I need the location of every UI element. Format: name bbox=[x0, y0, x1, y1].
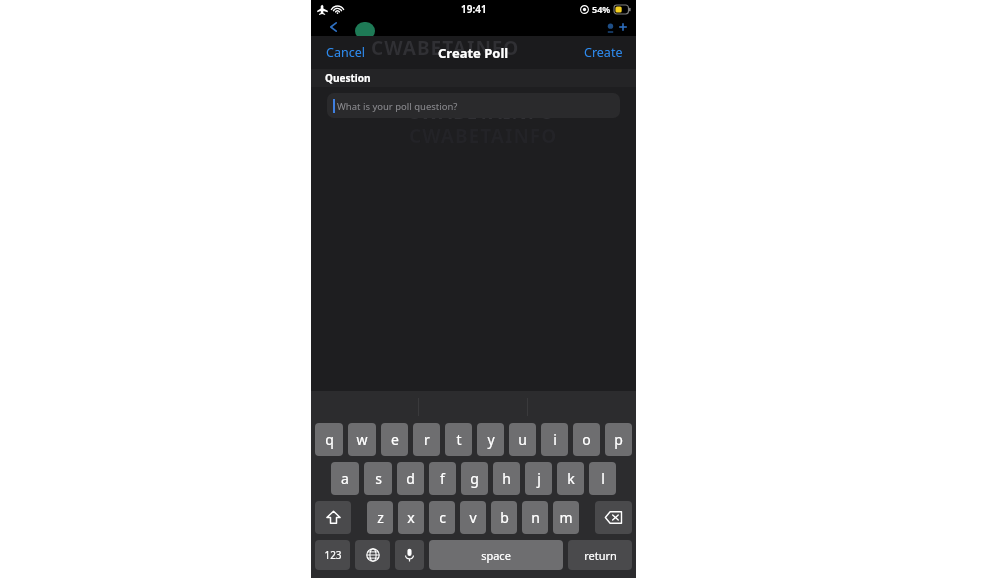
button[interactable]: v bbox=[460, 501, 486, 534]
button[interactable]: q bbox=[315, 423, 343, 456]
button[interactable]: Dictate bbox=[395, 540, 424, 570]
button[interactable]: space bbox=[429, 540, 563, 570]
button[interactable]: l bbox=[589, 462, 616, 495]
staticText: t bbox=[456, 430, 462, 449]
button[interactable]: e bbox=[381, 423, 408, 456]
staticText: g bbox=[470, 469, 479, 488]
staticText: e bbox=[391, 430, 399, 449]
button[interactable]: g bbox=[461, 462, 488, 495]
staticText: What is your poll question? bbox=[337, 100, 458, 113]
button[interactable]: h bbox=[493, 462, 520, 495]
staticText: 19:41 bbox=[461, 2, 487, 16]
staticText: x bbox=[407, 508, 415, 527]
button[interactable]: z bbox=[367, 501, 393, 534]
button[interactable]: 123 bbox=[315, 540, 350, 570]
staticText: u bbox=[518, 430, 527, 449]
staticText: w bbox=[356, 430, 368, 449]
button[interactable]: j bbox=[525, 462, 552, 495]
staticText: n bbox=[531, 508, 540, 527]
staticText: y bbox=[487, 430, 495, 449]
button[interactable]: x bbox=[398, 501, 424, 534]
button[interactable]: n bbox=[522, 501, 548, 534]
staticText: v bbox=[469, 508, 477, 527]
button[interactable]: Shift bbox=[315, 501, 351, 534]
staticText: d bbox=[406, 469, 415, 488]
button[interactable]: s bbox=[364, 462, 392, 495]
staticText: j bbox=[537, 469, 541, 488]
button[interactable]: t bbox=[445, 423, 472, 456]
button[interactable]: w bbox=[348, 423, 376, 456]
staticText: return bbox=[584, 548, 617, 563]
button[interactable]: r bbox=[413, 423, 440, 456]
staticText: p bbox=[614, 430, 623, 449]
staticText: CWABETAINFO bbox=[407, 99, 556, 125]
staticText: a bbox=[341, 469, 349, 488]
staticText: m bbox=[559, 508, 573, 527]
staticText: CWABETAINFO bbox=[371, 35, 520, 61]
staticText: q bbox=[325, 430, 334, 449]
button[interactable]: p bbox=[605, 423, 632, 456]
button[interactable]: u bbox=[509, 423, 536, 456]
staticText: r bbox=[424, 430, 430, 449]
button[interactable]: d bbox=[397, 462, 424, 495]
staticText: space bbox=[481, 548, 511, 563]
button[interactable]: y bbox=[477, 423, 504, 456]
button[interactable]: a bbox=[331, 462, 359, 495]
staticText: s bbox=[375, 469, 382, 488]
button[interactable]: f bbox=[429, 462, 456, 495]
staticText: 123 bbox=[324, 548, 342, 562]
staticText: o bbox=[582, 430, 591, 449]
staticText: b bbox=[500, 508, 509, 527]
staticText: Question bbox=[325, 71, 371, 85]
button[interactable]: Backspace bbox=[595, 501, 632, 534]
staticText: Create bbox=[584, 44, 623, 61]
staticText: i bbox=[553, 430, 557, 449]
staticText: c bbox=[439, 508, 446, 527]
staticText: Cancel bbox=[326, 44, 365, 61]
button[interactable]: What is your poll question? bbox=[327, 93, 620, 118]
staticText: h bbox=[502, 469, 511, 488]
staticText: l bbox=[601, 469, 605, 488]
button[interactable]: i bbox=[541, 423, 568, 456]
button[interactable]: o bbox=[573, 423, 600, 456]
button[interactable]: return bbox=[568, 540, 632, 570]
button[interactable]: Create bbox=[571, 38, 636, 67]
staticText: z bbox=[377, 508, 384, 527]
staticText: 54% bbox=[592, 3, 611, 15]
button[interactable]: Cancel bbox=[311, 38, 380, 67]
staticText: f bbox=[440, 469, 445, 488]
button[interactable]: m bbox=[553, 501, 579, 534]
button[interactable]: Change keyboard bbox=[355, 540, 390, 570]
button[interactable]: k bbox=[557, 462, 584, 495]
staticText: k bbox=[567, 469, 575, 488]
button[interactable]: b bbox=[491, 501, 517, 534]
staticText: Create Poll bbox=[438, 44, 509, 62]
button[interactable]: c bbox=[429, 501, 455, 534]
